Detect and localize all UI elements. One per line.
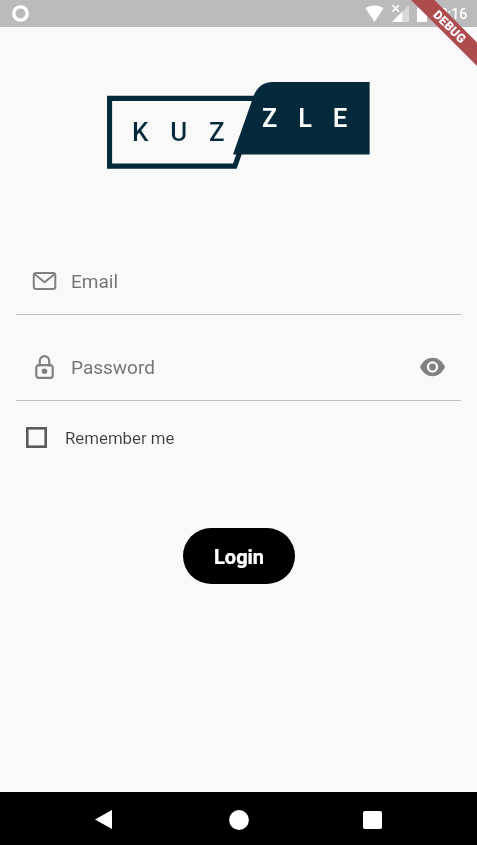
staticText: Email — [71, 270, 119, 292]
button[interactable]: Password — [16, 343, 461, 390]
button[interactable]: Back — [64, 793, 142, 845]
button[interactable]: Login — [183, 528, 295, 584]
staticText: Password — [71, 356, 155, 378]
button[interactable]: Remember me — [23, 417, 175, 458]
staticText: 2:16 — [440, 6, 467, 22]
button[interactable]: Email — [16, 257, 461, 304]
button[interactable]: Show password — [420, 352, 445, 382]
staticText: Z L E — [262, 104, 355, 133]
button[interactable]: Recent apps — [333, 793, 411, 845]
staticText: K U Z — [132, 117, 233, 147]
staticText: Login — [214, 545, 265, 568]
staticText: Remember me — [65, 428, 175, 448]
button[interactable]: Home — [200, 793, 278, 845]
